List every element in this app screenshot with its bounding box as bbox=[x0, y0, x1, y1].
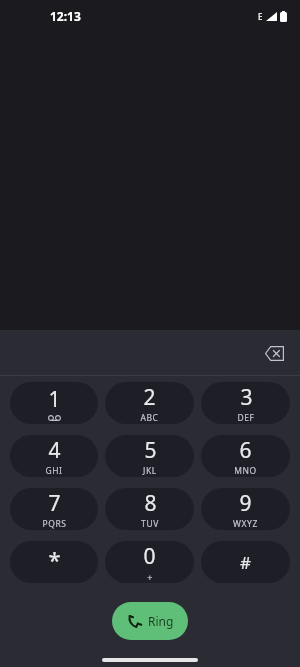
staticText: GHI bbox=[45, 465, 63, 477]
staticText: 6 bbox=[239, 436, 252, 465]
staticText: * bbox=[48, 544, 61, 574]
staticText: Ring bbox=[148, 613, 174, 629]
staticText: 1 bbox=[48, 385, 61, 414]
button[interactable]: 0 bbox=[105, 541, 194, 583]
button[interactable]: * bbox=[10, 541, 98, 583]
staticText: 9 bbox=[239, 489, 252, 518]
staticText: TUV bbox=[141, 518, 159, 530]
button[interactable]: 5 bbox=[105, 435, 194, 477]
button[interactable]: 9 bbox=[201, 488, 290, 530]
staticText: ABC bbox=[140, 412, 159, 424]
button[interactable]: 7 bbox=[10, 488, 98, 530]
staticText: 5 bbox=[144, 436, 157, 465]
staticText: JKL bbox=[143, 465, 157, 477]
button[interactable]: 6 bbox=[201, 435, 290, 477]
staticText: WXYZ bbox=[233, 518, 258, 530]
staticText: + bbox=[147, 571, 153, 583]
button[interactable]: # bbox=[201, 541, 290, 583]
staticText: 8 bbox=[144, 489, 157, 518]
staticText: 4 bbox=[48, 436, 61, 465]
button[interactable]: Ring bbox=[112, 602, 188, 640]
button[interactable]: Backspace bbox=[254, 333, 294, 373]
button[interactable]: 8 bbox=[105, 488, 194, 530]
staticText: 0 bbox=[143, 542, 156, 571]
staticText: 2 bbox=[143, 383, 156, 412]
staticText: 7 bbox=[48, 489, 61, 518]
staticText: # bbox=[240, 551, 251, 574]
button[interactable]: 3 bbox=[201, 382, 290, 424]
button[interactable]: 1 bbox=[10, 382, 98, 424]
staticText: E bbox=[258, 11, 263, 22]
staticText: 12:13 bbox=[50, 8, 81, 24]
button[interactable]: 2 bbox=[105, 382, 194, 424]
button[interactable]: 4 bbox=[10, 435, 98, 477]
staticText: MNO bbox=[234, 465, 257, 477]
staticText: PQRS bbox=[42, 518, 67, 530]
staticText: DEF bbox=[237, 412, 255, 424]
staticText: 3 bbox=[240, 383, 253, 412]
